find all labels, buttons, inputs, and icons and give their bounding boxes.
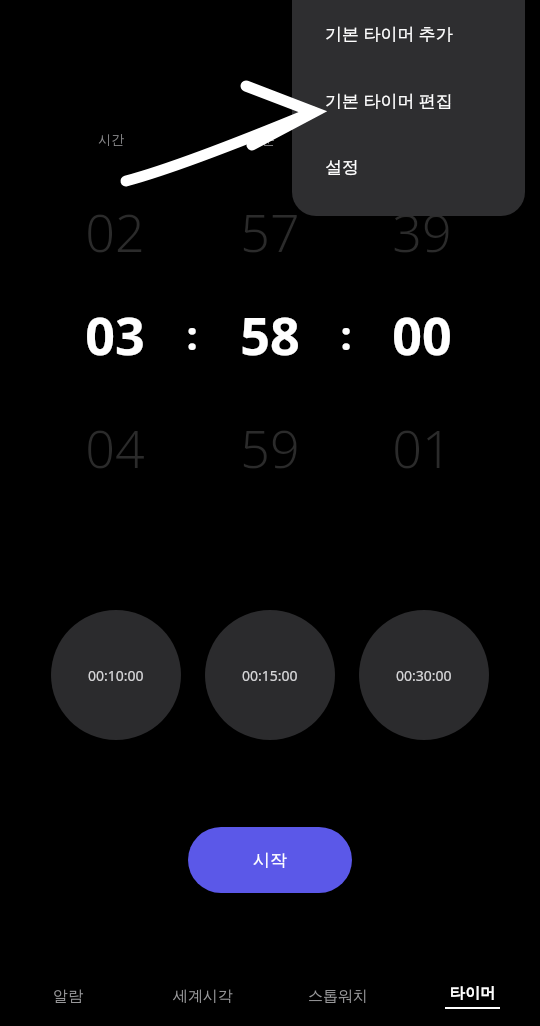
staticText: 03 <box>85 299 145 370</box>
staticText: : <box>186 307 198 361</box>
staticText: 00:10:00 <box>88 666 144 685</box>
staticText: 설정 <box>325 157 359 178</box>
staticText: 세계시각 <box>173 987 233 1006</box>
button[interactable]: 00:30:00 <box>359 610 489 740</box>
button[interactable]: 기본 타이머 편집 <box>292 67 525 134</box>
button[interactable]: 00:15:00 <box>205 610 335 740</box>
staticText: 알람 <box>53 987 83 1006</box>
button[interactable]: 00:10:00 <box>51 610 181 740</box>
staticText: 00:15:00 <box>242 666 298 685</box>
staticText: : <box>340 307 352 361</box>
staticText: 39 <box>392 196 452 267</box>
staticText: 57 <box>240 196 300 267</box>
staticText: 시작 <box>253 850 287 871</box>
staticText: 시간 <box>98 131 124 147</box>
staticText: 01 <box>392 412 452 483</box>
staticText: 59 <box>240 412 300 483</box>
staticText: 58 <box>240 299 300 370</box>
staticText: 00 <box>392 299 452 370</box>
staticText: 04 <box>85 412 145 483</box>
staticText: 기본 타이머 추가 <box>325 22 453 45</box>
button[interactable]: 시작 <box>188 827 352 893</box>
button[interactable]: 기본 타이머 추가 <box>292 0 525 67</box>
staticText: 02 <box>85 196 145 267</box>
button[interactable]: 설정 <box>292 134 525 201</box>
staticText: 00:30:00 <box>396 666 452 685</box>
staticText: 기본 타이머 편집 <box>325 89 453 112</box>
staticText: 스톱워치 <box>308 987 368 1006</box>
staticText: 타이머 <box>450 984 495 1003</box>
staticText: 분 <box>262 131 275 147</box>
button[interactable]: 알람 <box>0 966 135 1026</box>
button[interactable]: 스톱워치 <box>270 966 405 1026</box>
button[interactable]: 세계시각 <box>135 966 270 1026</box>
button[interactable]: 타이머 <box>405 966 540 1026</box>
